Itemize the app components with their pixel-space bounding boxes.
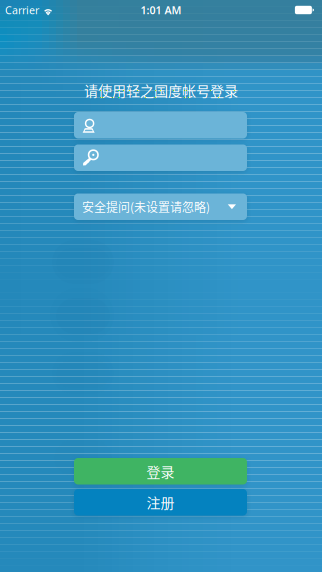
staticText: 安全提问(未设置请忽略) — [82, 198, 210, 215]
button[interactable]: Password — [74, 144, 247, 171]
button[interactable]: Username — [74, 112, 247, 138]
staticText: 注册 — [146, 492, 174, 512]
staticText: Carrier — [5, 3, 39, 17]
staticText: 请使用轻之国度帐号登录 — [84, 80, 238, 100]
button[interactable]: 安全提问(未设置请忽略) — [74, 193, 247, 220]
button[interactable]: 注册 — [74, 489, 247, 515]
staticText: 1:01 AM — [140, 3, 181, 17]
button[interactable]: 登录 — [74, 458, 247, 484]
staticText: 登录 — [146, 461, 174, 481]
